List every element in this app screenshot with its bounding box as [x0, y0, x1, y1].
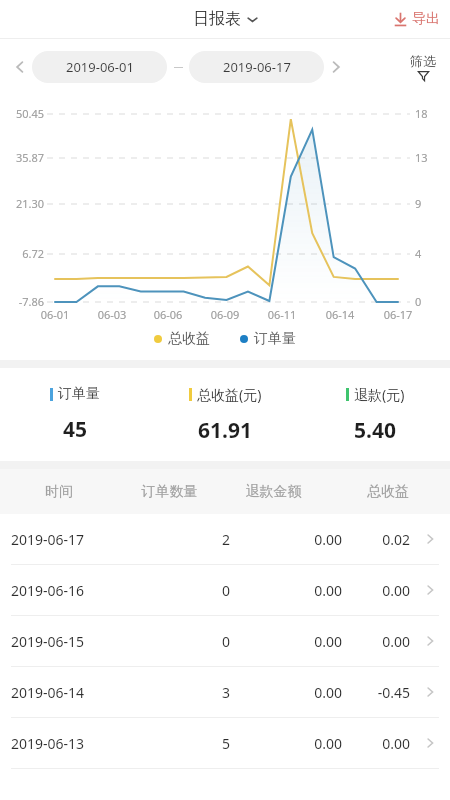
staticText: 2 [118, 530, 230, 549]
staticText: 06-06 [146, 307, 190, 322]
staticText: 订单数量 [118, 483, 221, 501]
staticText: 0.00 [230, 683, 342, 702]
staticText: 13 [415, 150, 445, 165]
button[interactable]: 2019-06-01 [32, 51, 167, 83]
staticText: 21.30 [2, 196, 44, 211]
staticText: 导出 [412, 10, 440, 28]
staticText: 06-14 [318, 307, 362, 322]
staticText: 50.45 [2, 106, 44, 121]
staticText: 9 [415, 196, 445, 211]
button[interactable]: 2019-06-16 [0, 565, 450, 616]
staticText: 0.02 [342, 530, 410, 549]
staticText: 06-11 [260, 307, 304, 322]
staticText: 筛选 [410, 53, 436, 69]
staticText: 退款(元) [354, 385, 405, 404]
staticText: 0 [118, 632, 230, 651]
button[interactable]: Next [324, 55, 348, 79]
button[interactable]: 2019-06-17 [0, 514, 450, 565]
staticText: 2019-06-17 [11, 530, 118, 549]
staticText: 45 [63, 415, 88, 444]
staticText: -7.86 [2, 294, 44, 309]
staticText: 61.91 [198, 416, 252, 445]
staticText: 0.00 [230, 734, 342, 753]
button[interactable]: 2019-06-13 [0, 718, 450, 769]
staticText: 2019-06-14 [11, 683, 118, 702]
staticText: -0.45 [342, 683, 410, 702]
staticText: 订单量 [254, 330, 296, 348]
staticText: 5 [118, 734, 230, 753]
button[interactable]: Previous [8, 55, 32, 79]
staticText: 0.00 [230, 581, 342, 600]
staticText: 0 [118, 581, 230, 600]
staticText: 2019-06-01 [66, 58, 134, 76]
staticText: 06-09 [203, 307, 247, 322]
staticText: 时间 [0, 483, 118, 501]
staticText: 2019-06-16 [11, 581, 118, 600]
staticText: 0.00 [230, 632, 342, 651]
button[interactable]: 2019-06-14 [0, 667, 450, 718]
staticText: 订单量 [58, 385, 100, 403]
staticText: 3 [118, 683, 230, 702]
staticText: 总收益 [168, 330, 210, 348]
staticText: 0.00 [342, 632, 410, 651]
button[interactable]: 订单量 [0, 368, 150, 461]
button[interactable]: 总收益(元) [150, 368, 300, 461]
button[interactable]: 日报表 [193, 9, 258, 29]
button[interactable]: 导出 [392, 10, 440, 28]
staticText: 日报表 [193, 9, 241, 29]
button[interactable]: 退款(元) [300, 368, 450, 461]
staticText: 0.00 [342, 734, 410, 753]
staticText: 35.87 [2, 150, 44, 165]
staticText: 0.00 [342, 581, 410, 600]
staticText: 06-03 [90, 307, 134, 322]
staticText: 2019-06-15 [11, 632, 118, 651]
button[interactable]: 筛选 [410, 53, 442, 82]
staticText: 6.72 [2, 246, 44, 261]
staticText: 18 [415, 106, 445, 121]
staticText: 2019-06-17 [223, 58, 291, 76]
staticText: 5.40 [354, 416, 396, 445]
staticText: 退款金额 [221, 483, 326, 501]
staticText: 2019-06-13 [11, 734, 118, 753]
staticText: 0 [415, 294, 445, 309]
staticText: 4 [415, 246, 445, 261]
staticText: 总收益(元) [197, 385, 262, 404]
staticText: 06-01 [33, 307, 77, 322]
staticText: 0.00 [230, 530, 342, 549]
staticText: 总收益 [326, 483, 450, 501]
staticText: 06-17 [376, 307, 420, 322]
button[interactable]: 2019-06-17 [189, 51, 324, 83]
button[interactable]: 2019-06-15 [0, 616, 450, 667]
